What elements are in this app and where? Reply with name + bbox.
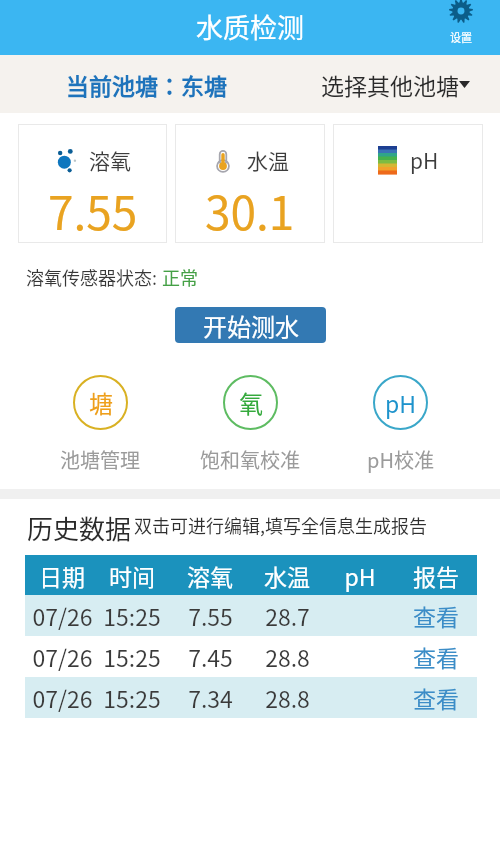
staticText: 28.8 xyxy=(265,681,310,714)
staticText: 正常 xyxy=(162,264,198,290)
button[interactable]: 溶氧 xyxy=(18,124,167,243)
staticText: 15:25 xyxy=(103,640,161,673)
staticText: 开始测水 xyxy=(203,308,299,343)
staticText: 7.55 xyxy=(188,599,233,632)
staticText: 07/26 xyxy=(32,681,93,714)
staticText: 溶氧传感器状态: xyxy=(26,264,162,290)
staticText: 池塘管理 xyxy=(60,445,140,474)
staticText: 塘 xyxy=(89,385,113,420)
staticText: 饱和氧校准 xyxy=(200,445,300,474)
staticText: 选择其他池塘 xyxy=(321,68,459,101)
button[interactable]: pH xyxy=(325,375,475,474)
staticText: 28.8 xyxy=(265,640,310,673)
staticText: pH校准 xyxy=(367,445,434,474)
staticText: 水温 xyxy=(264,559,310,592)
staticText: 查看 xyxy=(413,599,459,632)
staticText: 查看 xyxy=(413,681,459,714)
staticText: 28.7 xyxy=(265,599,310,632)
staticText: 水温 xyxy=(247,145,289,175)
staticText: 溶氧 xyxy=(187,559,233,592)
staticText: 报告 xyxy=(413,559,459,592)
staticText: 7.34 xyxy=(188,681,233,714)
button[interactable]: 选择其他池塘 xyxy=(321,68,470,101)
staticText: 15:25 xyxy=(103,599,161,632)
button[interactable]: 氧 xyxy=(175,375,325,474)
button[interactable]: 水温 xyxy=(175,124,325,243)
staticText: 07/26 xyxy=(32,640,93,673)
button[interactable]: 07/26 xyxy=(25,595,477,636)
staticText: 7.55 xyxy=(48,177,138,243)
staticText: 历史数据 xyxy=(27,509,132,547)
staticText: 07/26 xyxy=(32,599,93,632)
button[interactable]: 开始测水 xyxy=(175,307,326,343)
staticText: 查看 xyxy=(413,640,459,673)
staticText: pH xyxy=(344,559,376,592)
staticText: 水质检测 xyxy=(196,7,304,46)
button[interactable]: 07/26 xyxy=(25,636,477,677)
staticText: 日期 xyxy=(39,559,85,592)
button[interactable]: 设置 xyxy=(449,0,473,45)
staticText: pH xyxy=(410,145,439,175)
button[interactable]: 日期 xyxy=(25,555,477,595)
button[interactable]: 塘 xyxy=(25,375,175,474)
staticText: 溶氧 xyxy=(89,145,131,175)
staticText: 设置 xyxy=(450,29,472,45)
staticText: 时间 xyxy=(109,559,155,592)
staticText: 15:25 xyxy=(103,681,161,714)
staticText: 30.1 xyxy=(205,177,295,243)
button[interactable]: pH xyxy=(333,124,483,243)
staticText: pH xyxy=(385,386,417,419)
staticText: 氧 xyxy=(239,385,263,420)
staticText: 7.45 xyxy=(188,640,233,673)
button[interactable]: 07/26 xyxy=(25,677,477,718)
staticText: 当前池塘：东塘 xyxy=(66,68,227,101)
staticText: 双击可进行编辑,填写全信息生成报告 xyxy=(134,512,428,538)
